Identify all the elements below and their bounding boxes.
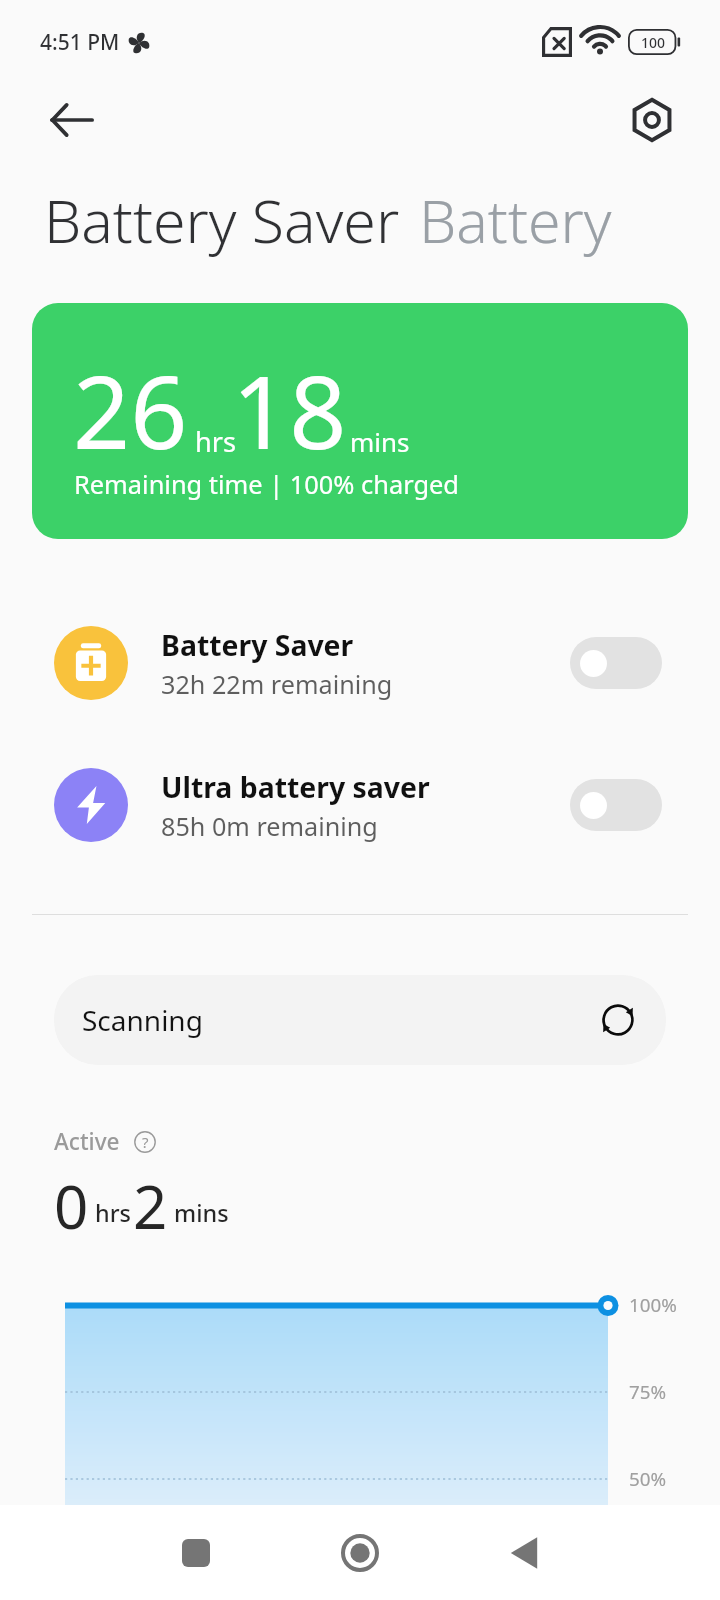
staticText: Scanning xyxy=(82,1001,203,1039)
button[interactable]: Home xyxy=(314,1507,406,1599)
button[interactable]: Battery Saver xyxy=(0,615,720,711)
button[interactable]: Ultra battery saver xyxy=(0,757,720,853)
staticText: 4:51 PM xyxy=(40,28,120,57)
button[interactable]: Settings xyxy=(602,72,702,168)
button[interactable]: Back xyxy=(478,1507,570,1599)
button[interactable]: Battery Saver xyxy=(40,176,404,264)
staticText: 2 xyxy=(133,1165,168,1247)
staticText: hrs xyxy=(195,423,237,460)
button[interactable]: Toggle Battery Saver xyxy=(570,637,662,689)
staticText: Ultra battery saver xyxy=(161,768,430,807)
button[interactable]: Toggle Ultra battery saver xyxy=(570,779,662,831)
staticText: 85h 0m remaining xyxy=(161,809,378,843)
staticText: 32h 22m remaining xyxy=(161,667,393,701)
button[interactable]: Back xyxy=(22,72,122,168)
staticText: 0 xyxy=(54,1165,89,1247)
staticText: 26 xyxy=(73,342,188,478)
button[interactable]: 26 xyxy=(32,303,688,539)
staticText: Remaining time | 100% charged xyxy=(74,467,459,502)
staticText: mins xyxy=(174,1197,229,1229)
staticText: 100% xyxy=(629,1292,677,1318)
other: Refresh xyxy=(600,1002,636,1038)
staticText: hrs xyxy=(95,1197,131,1229)
staticText: Battery Saver xyxy=(44,180,400,260)
button[interactable]: Battery xyxy=(415,176,616,264)
staticText: Battery xyxy=(419,180,612,260)
staticText: 18 xyxy=(232,342,347,478)
staticText: ? xyxy=(142,1132,149,1152)
staticText: 50% xyxy=(629,1466,667,1492)
other: Help xyxy=(134,1131,156,1153)
staticText: Battery Saver xyxy=(161,626,354,665)
staticText: 100 xyxy=(641,33,666,52)
staticText: Active xyxy=(54,1126,120,1157)
staticText: 75% xyxy=(629,1379,667,1405)
button[interactable]: Recents xyxy=(150,1507,242,1599)
staticText: mins xyxy=(350,424,410,459)
button[interactable]: Scanning xyxy=(54,975,666,1065)
